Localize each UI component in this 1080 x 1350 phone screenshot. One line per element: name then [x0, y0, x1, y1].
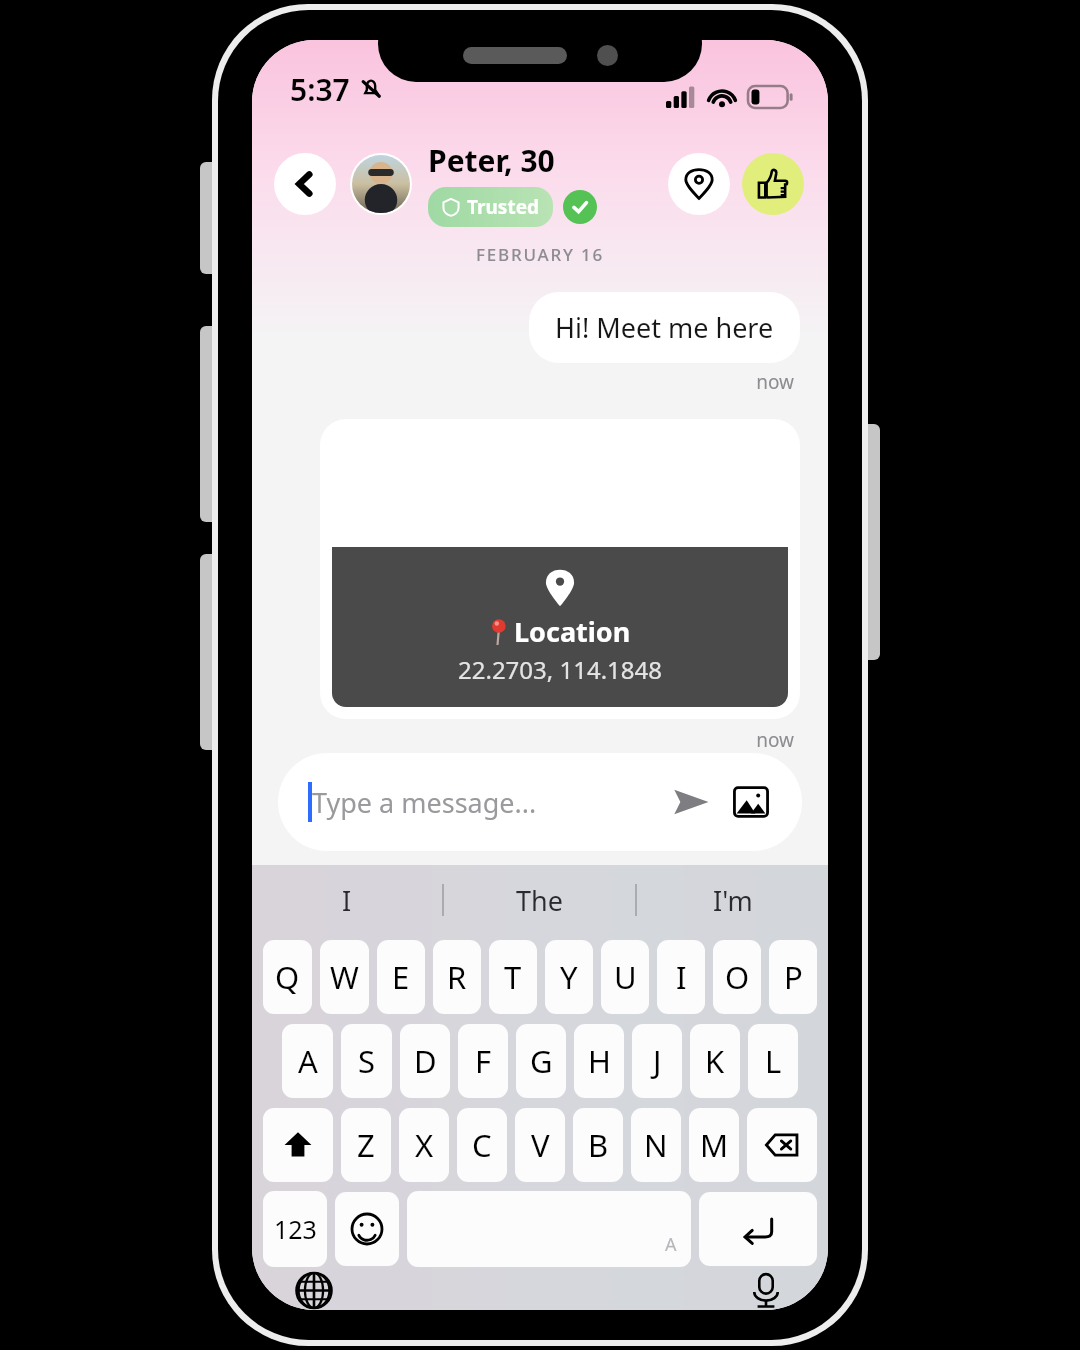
staticText: A	[665, 1232, 677, 1257]
staticText: T	[504, 956, 522, 998]
button[interactable]: Space	[407, 1191, 691, 1267]
button[interactable]: Q	[263, 940, 312, 1014]
staticText: Peter, 30	[428, 140, 555, 181]
button[interactable]: Emoji	[335, 1192, 399, 1266]
staticText: J	[653, 1040, 662, 1082]
button[interactable]: B	[573, 1108, 623, 1182]
staticText: now	[252, 369, 794, 395]
staticText: Location	[514, 613, 631, 650]
staticText: W	[330, 956, 359, 998]
staticText: Q	[275, 956, 300, 998]
button[interactable]: Shift	[263, 1108, 333, 1182]
staticText: R	[447, 956, 467, 998]
staticText: I	[342, 882, 352, 919]
staticText: F	[475, 1040, 492, 1082]
staticText: Hi! Meet me here	[555, 309, 774, 346]
staticText: S	[358, 1040, 376, 1082]
button[interactable]: Like	[742, 153, 804, 215]
button[interactable]: I	[252, 865, 442, 935]
staticText: L	[765, 1040, 782, 1082]
button[interactable]: Back	[274, 153, 336, 215]
button[interactable]: M	[689, 1108, 739, 1182]
staticText: The	[516, 882, 563, 919]
staticText: O	[725, 956, 750, 998]
button[interactable]: T	[489, 940, 537, 1014]
staticText: Type a message...	[312, 784, 537, 821]
staticText: A	[298, 1040, 318, 1082]
button[interactable]: D	[400, 1024, 450, 1098]
button[interactable]: W	[320, 940, 369, 1014]
staticText: V	[531, 1124, 550, 1166]
staticText: G	[530, 1040, 553, 1082]
button[interactable]: K	[690, 1024, 740, 1098]
staticText: I	[676, 956, 687, 998]
button[interactable]: The	[444, 865, 635, 935]
button[interactable]: R	[433, 940, 481, 1014]
button[interactable]: P	[769, 940, 817, 1014]
staticText: 123	[274, 1212, 317, 1246]
button[interactable]: Share location	[668, 153, 730, 215]
staticText: B	[588, 1124, 609, 1166]
button[interactable]: Backspace	[747, 1108, 817, 1182]
staticText: 5:37	[290, 69, 350, 110]
button[interactable]: Attach image	[728, 779, 774, 825]
button[interactable]: G	[516, 1024, 566, 1098]
staticText: Trusted	[467, 194, 539, 220]
button[interactable]: N	[631, 1108, 681, 1182]
staticText: D	[414, 1040, 437, 1082]
button[interactable]: Type a message...	[278, 753, 802, 851]
button[interactable]: C	[457, 1108, 507, 1182]
button[interactable]: I'm	[637, 865, 828, 935]
button[interactable]: Enter	[699, 1192, 817, 1266]
button[interactable]: Verified	[563, 190, 597, 224]
button[interactable]: Trusted	[428, 187, 553, 227]
button[interactable]: S	[341, 1024, 392, 1098]
staticText: 22.2703, 114.1848	[458, 653, 662, 686]
button[interactable]: U	[601, 940, 649, 1014]
staticText: I'm	[713, 882, 753, 919]
button[interactable]: I	[657, 940, 705, 1014]
staticText: K	[705, 1040, 725, 1082]
staticText: H	[588, 1040, 611, 1082]
button[interactable]: Voice input	[738, 1271, 794, 1310]
staticText: N	[644, 1124, 668, 1166]
staticText: Y	[560, 956, 578, 998]
button[interactable]: F	[458, 1024, 508, 1098]
button[interactable]: Z	[341, 1108, 391, 1182]
button[interactable]: E	[377, 940, 425, 1014]
staticText: X	[415, 1124, 434, 1166]
staticText: FEBRUARY 16	[252, 243, 828, 266]
button[interactable]: V	[515, 1108, 565, 1182]
staticText: now	[252, 727, 794, 753]
button[interactable]: Send	[668, 779, 714, 825]
button[interactable]: L	[748, 1024, 798, 1098]
staticText: M	[700, 1124, 729, 1166]
button[interactable]: 123	[263, 1191, 327, 1267]
button[interactable]: A	[282, 1024, 333, 1098]
staticText: Z	[357, 1124, 375, 1166]
staticText: E	[392, 956, 410, 998]
button[interactable]: X	[399, 1108, 449, 1182]
button[interactable]: O	[713, 940, 761, 1014]
button[interactable]: Location	[320, 419, 800, 719]
staticText: C	[472, 1124, 492, 1166]
button[interactable]: H	[574, 1024, 624, 1098]
button[interactable]: Hi! Meet me here	[529, 292, 800, 363]
button[interactable]: Y	[545, 940, 593, 1014]
button[interactable]: Language	[286, 1271, 342, 1310]
button[interactable]: J	[632, 1024, 682, 1098]
staticText: U	[614, 956, 637, 998]
staticText: P	[784, 956, 803, 998]
